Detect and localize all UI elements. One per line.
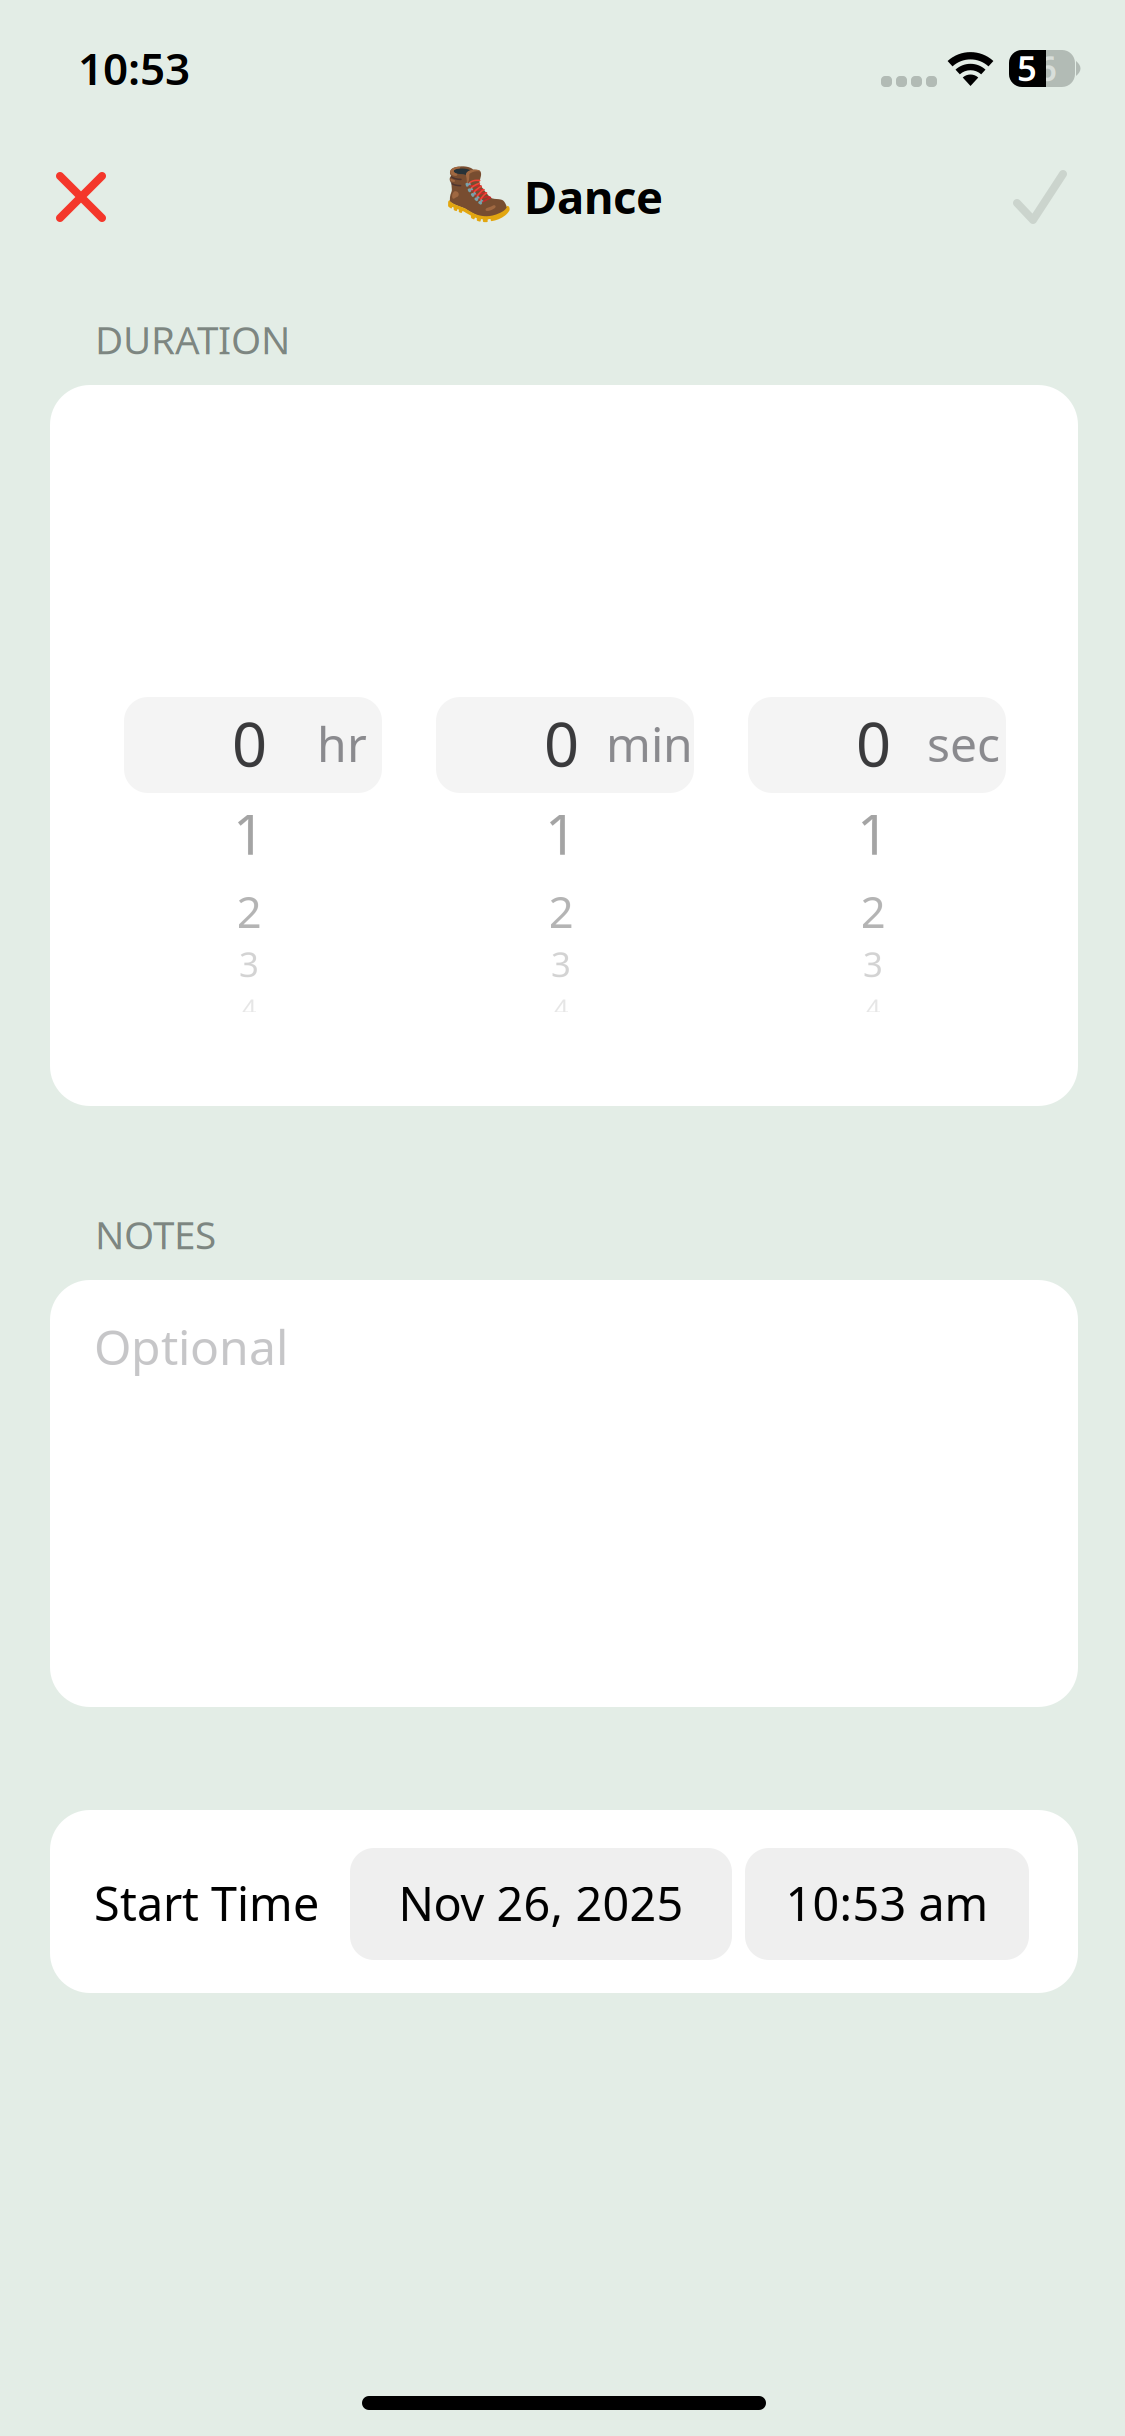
staticText: 10:53	[78, 39, 190, 97]
staticText: 10:53 am	[785, 1872, 988, 1934]
staticText: 56	[1017, 45, 1037, 137]
staticText: Optional	[94, 1314, 288, 1378]
staticText: 2	[548, 882, 573, 940]
staticText: 1	[233, 796, 265, 870]
staticText: 1	[545, 796, 577, 870]
staticText: 1	[857, 796, 889, 870]
staticText: 4	[866, 991, 880, 1024]
staticText: sec	[927, 711, 1000, 775]
staticText: Nov 26, 2025	[398, 1872, 683, 1934]
staticText: 0	[856, 702, 891, 784]
button[interactable]: 10:53 am	[745, 1848, 1029, 1960]
staticText: min	[606, 711, 693, 775]
staticText: 2	[236, 882, 261, 940]
button[interactable]: Duration picker	[50, 385, 1078, 1106]
staticText: 56	[1017, 45, 1057, 91]
staticText: 0	[232, 702, 267, 784]
staticText: Dance	[524, 166, 663, 227]
staticText: 3	[863, 941, 883, 987]
staticText: 4	[242, 991, 256, 1024]
staticText: DURATION	[95, 313, 290, 365]
staticText: 2	[860, 882, 885, 940]
staticText: 3	[551, 941, 571, 987]
button[interactable]: Cancel	[31, 148, 131, 246]
button[interactable]: Notes	[50, 1280, 1078, 1707]
staticText: 3	[239, 941, 259, 987]
staticText: Start Time	[94, 1872, 319, 1934]
staticText: hr	[317, 711, 367, 775]
button[interactable]: Nov 26, 2025	[350, 1848, 732, 1960]
staticText: 🥾	[444, 160, 514, 224]
staticText: 4	[554, 991, 568, 1024]
button[interactable]: Save	[964, 148, 1064, 246]
staticText: 0	[544, 702, 579, 784]
staticText: NOTES	[95, 1208, 216, 1260]
